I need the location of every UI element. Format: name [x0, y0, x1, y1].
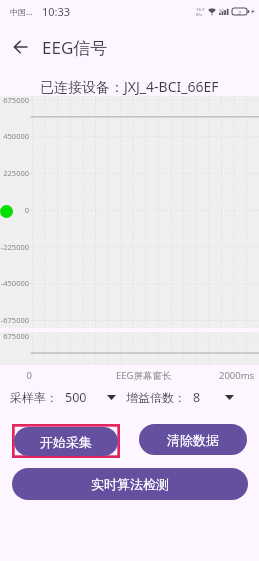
staticText: 675000: [0, 331, 29, 341]
staticText: 中国...: [10, 6, 33, 17]
staticText: EEG屏幕窗长: [116, 369, 172, 382]
button[interactable]: 实时算法检测: [12, 468, 248, 500]
staticText: -225000: [0, 242, 29, 252]
staticText: 2: [238, 9, 242, 16]
staticText: 450000: [0, 131, 29, 141]
staticText: 500: [65, 389, 87, 406]
button[interactable]: 清除数据: [139, 424, 247, 455]
staticText: 采样率：: [10, 390, 58, 405]
staticText: 5G: [219, 8, 225, 13]
staticText: 清除数据: [167, 432, 219, 448]
button[interactable]: 8: [193, 386, 234, 408]
staticText: 16.7: [196, 7, 205, 13]
staticText: EEG信号: [42, 36, 108, 59]
button[interactable]: 开始采集: [12, 424, 120, 458]
button[interactable]: Back: [6, 33, 34, 61]
staticText: 675000: [0, 95, 29, 105]
button[interactable]: 500: [65, 386, 116, 408]
staticText: 225000: [0, 168, 29, 178]
staticText: 开始采集: [40, 434, 92, 450]
staticText: -675000: [0, 315, 29, 325]
staticText: 增益倍数：: [126, 390, 186, 405]
staticText: 实时算法检测: [91, 476, 169, 492]
staticText: -450000: [0, 278, 29, 288]
staticText: K/s: [196, 12, 203, 18]
staticText: 8: [193, 389, 201, 406]
staticText: 2000ms: [219, 369, 255, 382]
staticText: 0: [0, 205, 29, 215]
staticText: 已连接设备：JXJ_4-BCI_66EF: [40, 77, 219, 95]
staticText: 10:33: [42, 4, 71, 19]
staticText: 0: [0, 369, 32, 382]
